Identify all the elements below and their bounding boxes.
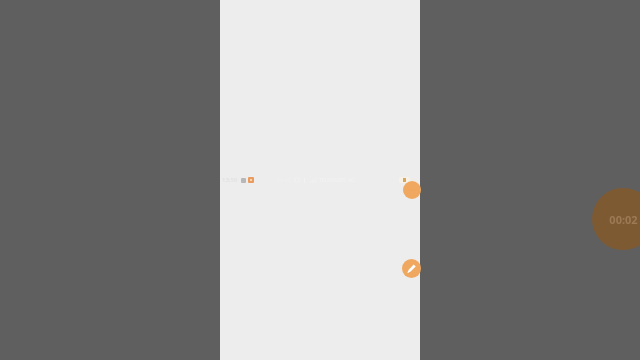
button[interactable]: Record <box>403 181 421 199</box>
staticText: 13:56 <box>222 176 238 184</box>
button[interactable]: Edit <box>402 259 421 278</box>
staticText: 00:02 <box>609 212 638 227</box>
staticText: 36 <box>411 177 418 184</box>
